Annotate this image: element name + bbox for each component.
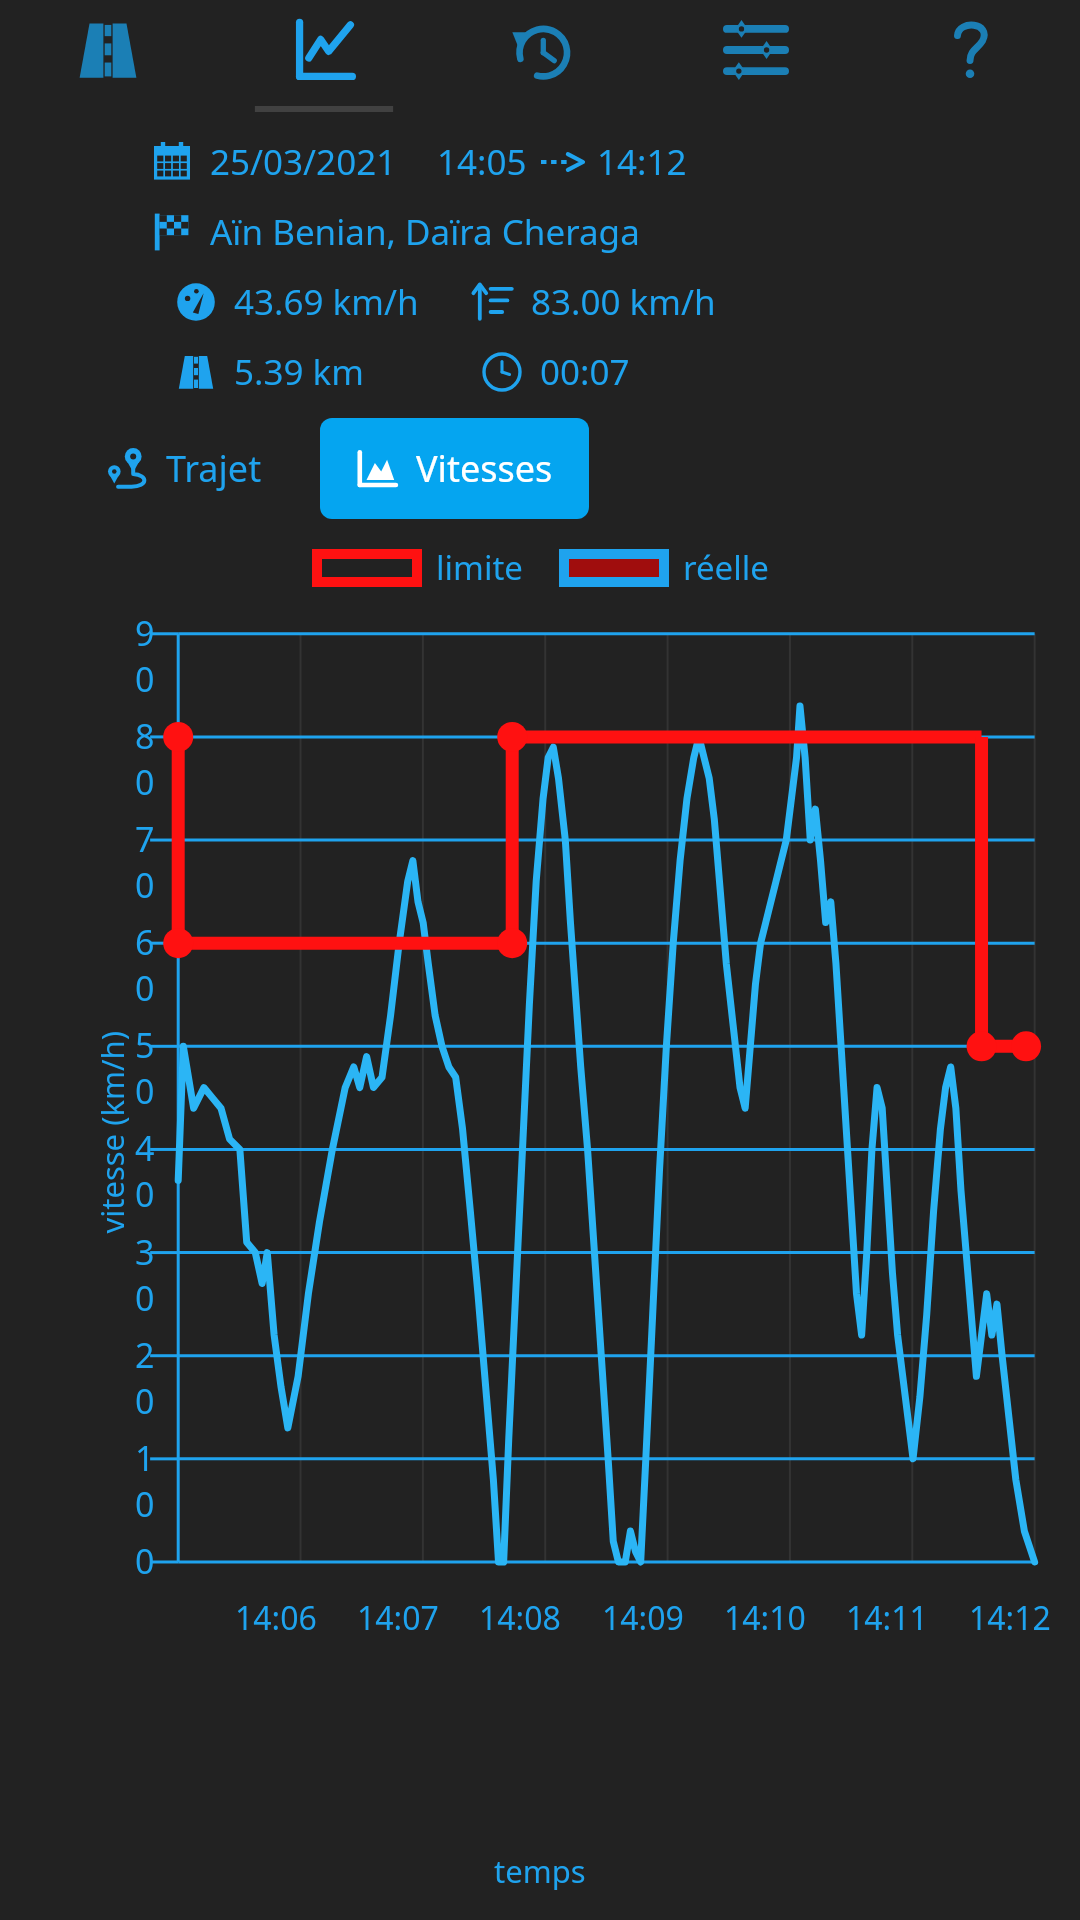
staticText: réelle	[683, 545, 769, 590]
staticText: 14:07	[357, 1596, 439, 1640]
button[interactable]: Settings	[648, 0, 864, 100]
staticText: 25/03/2021	[210, 138, 397, 186]
staticText: 00:07	[540, 348, 630, 396]
button[interactable]: Vitesses	[320, 418, 589, 519]
staticText: temps	[494, 1850, 586, 1892]
staticText: 14:10	[724, 1596, 806, 1640]
staticText: 14:06	[235, 1596, 317, 1640]
staticText: 14:09	[602, 1596, 684, 1640]
staticText: Trajet	[166, 444, 262, 493]
button[interactable]: Speed chart	[216, 0, 432, 100]
staticText: vitesse (km/h)	[90, 1030, 132, 1233]
button[interactable]: Trajet	[92, 424, 278, 513]
staticText: 14:11	[846, 1596, 928, 1640]
button[interactable]: History	[432, 0, 648, 100]
button[interactable]: Road	[0, 0, 216, 100]
staticText: Aïn Benian, Daïra Cheraga	[210, 208, 640, 256]
button[interactable]: Help	[864, 0, 1080, 100]
staticText: 14:12	[969, 1596, 1051, 1640]
staticText: limite	[436, 545, 523, 590]
staticText: 14:05	[437, 138, 527, 186]
staticText: 14:12	[597, 138, 687, 186]
staticText: 5.39 km	[234, 348, 364, 396]
staticText: Vitesses	[416, 444, 553, 493]
staticText: 14:08	[479, 1596, 561, 1640]
staticText: 83.00 km/h	[531, 278, 716, 326]
staticText: 43.69 km/h	[234, 278, 419, 326]
